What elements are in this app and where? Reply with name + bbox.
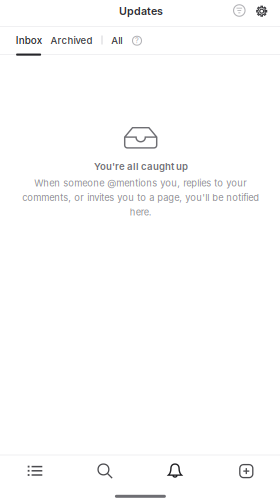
staticText: Updates (119, 4, 163, 17)
button[interactable]: Filter (228, 0, 250, 21)
button[interactable]: Updates (140, 448, 210, 493)
staticText: ? (135, 36, 139, 45)
staticText: You're all caught up (94, 161, 188, 172)
staticText: When someone @mentions you, replies to y… (22, 177, 259, 218)
button[interactable]: Home (0, 448, 70, 493)
button[interactable]: New (211, 449, 280, 494)
staticText: Archived (51, 35, 93, 46)
button[interactable]: Help (128, 32, 146, 50)
button[interactable]: Search (70, 449, 140, 494)
staticText: All (111, 35, 122, 46)
staticText: Inbox (16, 34, 42, 46)
button[interactable]: All (105, 27, 129, 53)
button[interactable]: Settings (251, 0, 273, 22)
button[interactable]: Inbox (12, 27, 46, 53)
button[interactable]: Archived (47, 27, 97, 53)
